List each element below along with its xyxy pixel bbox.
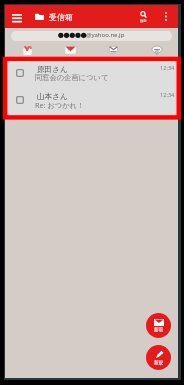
staticText: Re: おつかれ！ xyxy=(35,100,85,110)
staticText: 12:34 xyxy=(160,91,175,99)
staticText: 山本さん xyxy=(37,92,68,102)
button[interactable]: ドコモメール xyxy=(49,42,92,58)
button[interactable]: 山本さん xyxy=(5,88,178,116)
button[interactable]: 新規メール作成 xyxy=(146,345,171,370)
button[interactable]: SMS xyxy=(135,42,178,58)
staticText: 原田さん xyxy=(37,65,68,75)
button[interactable]: Yahoo!メール xyxy=(5,42,49,58)
staticText: 新着 xyxy=(154,327,164,333)
staticText: @yahoo.ne.jp xyxy=(86,31,125,39)
button[interactable]: 原田さん xyxy=(5,61,178,89)
staticText: 新規 xyxy=(154,360,164,366)
staticText: 同窓会の企画について xyxy=(35,73,109,82)
staticText: 12:34 xyxy=(160,64,175,72)
button[interactable]: @yahoo.ne.jp xyxy=(11,31,172,41)
button[interactable]: メニュー xyxy=(7,7,26,26)
button[interactable]: 検索 xyxy=(134,7,152,26)
staticText: 受信箱 xyxy=(49,12,73,22)
button[interactable]: MMS xyxy=(92,42,135,58)
button[interactable]: 新着メール xyxy=(146,313,171,338)
staticText: 検索 xyxy=(140,19,147,23)
button[interactable]: その他のオプション xyxy=(157,7,174,26)
